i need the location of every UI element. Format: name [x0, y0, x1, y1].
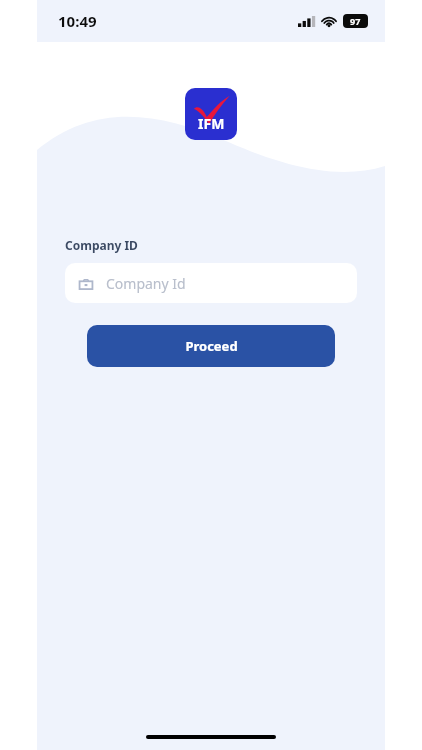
staticText: Company Id — [106, 274, 186, 293]
button[interactable]: Company — [65, 263, 357, 303]
staticText: Proceed — [185, 337, 238, 355]
staticText: IFM — [198, 114, 225, 133]
staticText: 10:49 — [58, 11, 97, 31]
staticText: 97 — [350, 15, 361, 27]
other: IFM logo — [185, 88, 237, 140]
button[interactable]: Proceed — [87, 325, 335, 367]
staticText: Company ID — [65, 237, 138, 253]
other: Company — [79, 277, 93, 290]
